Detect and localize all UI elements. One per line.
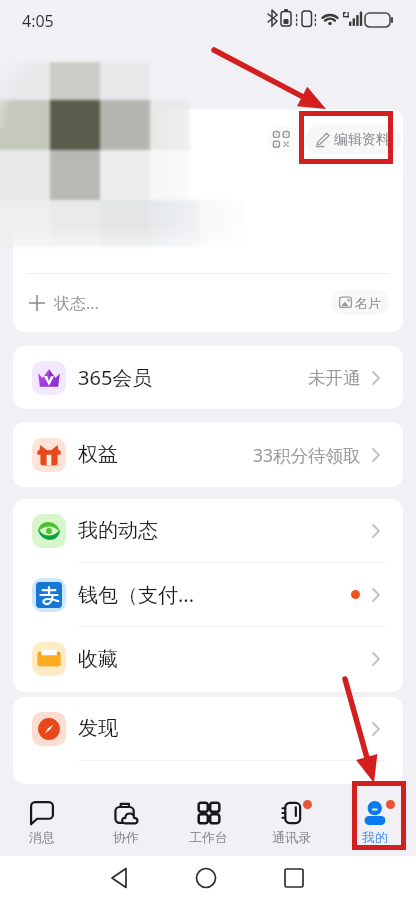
button[interactable]: 协作 (84, 784, 167, 856)
staticText: 33积分待领取 (253, 443, 361, 467)
staticText: 4:05 (22, 10, 54, 32)
button[interactable]: 工作台 (167, 784, 250, 856)
button[interactable]: 发现 (13, 697, 403, 760)
button[interactable]: 名片 (331, 290, 389, 315)
staticText: 通讯录 (272, 829, 311, 845)
button[interactable]: 365会员 (13, 346, 403, 409)
button[interactable]: 编辑资料 (305, 125, 401, 154)
button[interactable]: 权益 (13, 422, 403, 487)
staticText: 钱包（支付... (78, 581, 195, 608)
button[interactable]: 我的 (333, 784, 416, 856)
staticText: 我的动态 (78, 518, 158, 543)
button[interactable]: 收藏 (13, 627, 403, 691)
staticText: 协作 (113, 829, 139, 845)
button[interactable]: 状态... (29, 292, 99, 314)
button[interactable]: 我的动态 (13, 499, 403, 562)
staticText: 权益 (78, 442, 118, 467)
button[interactable]: 通讯录 (250, 784, 333, 856)
staticText: 工作台 (189, 829, 228, 845)
staticText: 消息 (29, 829, 55, 845)
staticText: 状态... (54, 292, 99, 314)
staticText: 编辑资料 (334, 131, 390, 149)
staticText: 365会员 (78, 364, 153, 391)
staticText: 收藏 (78, 647, 118, 672)
staticText: 未开通 (308, 367, 361, 389)
staticText: 名片 (355, 295, 381, 311)
button[interactable]: 消息 (0, 784, 84, 856)
staticText: 我的 (362, 829, 388, 845)
staticText: 发现 (78, 716, 118, 741)
button[interactable]: 钱包（支付... (13, 563, 403, 626)
button[interactable]: QR code (268, 126, 295, 153)
